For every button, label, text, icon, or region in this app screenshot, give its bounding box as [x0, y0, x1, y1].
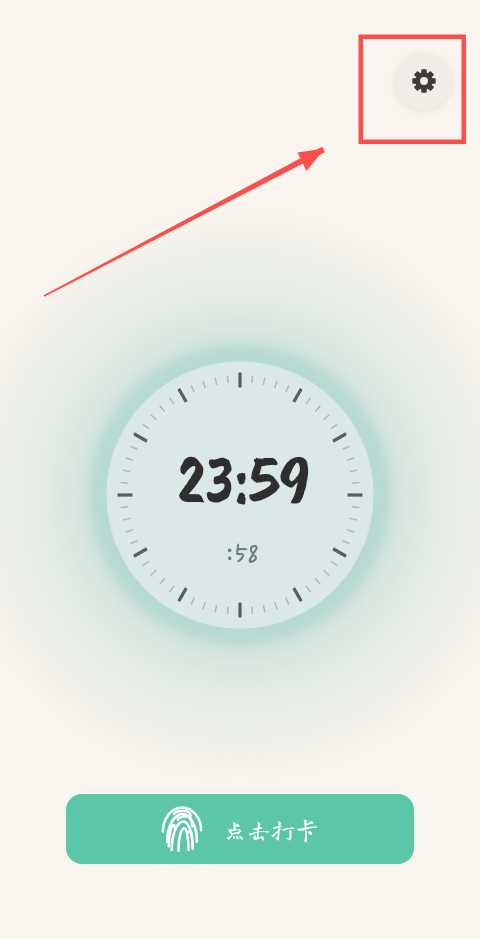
staticText: 点击打卡 [223, 817, 319, 841]
button[interactable]: 点击打卡 [66, 794, 414, 864]
staticText: 23:59 [177, 437, 311, 513]
button[interactable]: Settings [395, 52, 452, 109]
staticText: :58 [224, 539, 259, 573]
